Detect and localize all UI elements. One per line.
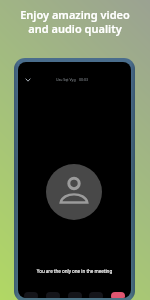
button[interactable]: Microphone bbox=[24, 292, 38, 298]
staticText: 00:03 bbox=[79, 77, 88, 82]
staticText: You are the only one in the meeting bbox=[18, 268, 131, 274]
button[interactable]: Collapse bbox=[20, 72, 36, 88]
staticText: Uzu Sqt Vyg bbox=[56, 77, 76, 82]
button[interactable]: Raise hand bbox=[89, 292, 103, 298]
button[interactable]: End call bbox=[111, 292, 125, 298]
button[interactable]: Camera bbox=[46, 292, 60, 298]
staticText: Enjoy amazing video and audio quality bbox=[20, 7, 130, 36]
button[interactable]: Share screen bbox=[68, 292, 82, 298]
